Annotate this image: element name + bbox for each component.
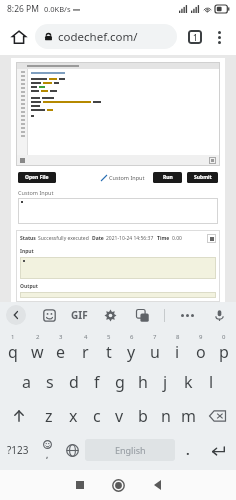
staticText: .	[186, 441, 190, 459]
staticText: k	[184, 371, 193, 393]
staticText: ,	[46, 449, 49, 460]
staticText: x	[69, 405, 78, 427]
staticText: j	[163, 371, 168, 393]
staticText: 6	[130, 333, 134, 341]
button[interactable]: Back	[138, 470, 177, 500]
button[interactable]: Tabs	[182, 24, 208, 50]
button[interactable]: z	[37, 399, 61, 433]
staticText: 0.0KB/s	[44, 4, 71, 14]
staticText: Submit	[194, 174, 212, 181]
staticText: h	[138, 371, 148, 393]
staticText: 4	[84, 333, 88, 341]
button[interactable]: 5	[97, 331, 120, 365]
button[interactable]: n	[154, 399, 177, 433]
staticText: d	[69, 371, 79, 393]
staticText: 1	[193, 32, 198, 43]
button[interactable]: v	[108, 399, 131, 433]
staticText: w	[31, 341, 44, 363]
staticText: c	[93, 405, 101, 427]
button[interactable]: 6	[120, 331, 143, 365]
button[interactable]: a	[14, 365, 38, 399]
button[interactable]: Copy	[207, 234, 216, 243]
button[interactable]: Recents	[60, 470, 99, 500]
button[interactable]: More options	[208, 26, 230, 48]
button[interactable]: codechef.com/submit/H	[35, 24, 177, 49]
button[interactable]: Open File	[18, 172, 56, 183]
staticText: b	[138, 405, 148, 427]
staticText: Successfully executed	[38, 235, 89, 242]
staticText: Custom Input	[109, 174, 145, 181]
staticText: a	[22, 371, 31, 393]
staticText: 0	[222, 333, 226, 341]
staticText: p	[219, 341, 229, 363]
staticText: Input	[20, 248, 34, 255]
staticText: Output	[20, 283, 38, 290]
button[interactable]: 3	[49, 331, 73, 365]
staticText: Run	[163, 174, 173, 181]
button[interactable]: 2	[25, 331, 49, 365]
staticText: English	[115, 444, 146, 456]
button[interactable]: Voice input	[209, 305, 229, 325]
button[interactable]: 7	[143, 331, 166, 365]
staticText: Custom Input	[18, 189, 54, 196]
button[interactable]: j	[154, 365, 177, 399]
staticText: GIF	[71, 308, 88, 322]
staticText: q	[8, 341, 18, 363]
button[interactable]: 1	[1, 331, 25, 365]
staticText: o	[196, 341, 206, 363]
staticText: 2	[36, 333, 40, 341]
button[interactable]: Backspace	[200, 399, 235, 433]
button[interactable]: l	[200, 365, 223, 399]
button[interactable]: m	[177, 399, 200, 433]
button[interactable]: x	[61, 399, 85, 433]
staticText: s	[46, 371, 54, 393]
button[interactable]: Shift	[1, 399, 37, 433]
staticText: 2021-10-24 14:56:37	[106, 235, 154, 242]
button[interactable]: ?123	[1, 433, 35, 467]
button[interactable]: Enter	[200, 433, 235, 467]
button[interactable]: Change language	[60, 433, 85, 467]
button[interactable]: Settings	[100, 305, 120, 325]
staticText: m	[181, 405, 196, 427]
staticText: 9	[199, 333, 203, 341]
button[interactable]: d	[62, 365, 85, 399]
button[interactable]: .	[175, 433, 200, 467]
button[interactable]: English	[85, 439, 175, 461]
button[interactable]: k	[177, 365, 200, 399]
button[interactable]: 9	[189, 331, 212, 365]
staticText: z	[45, 405, 53, 427]
button[interactable]: GIF	[71, 308, 88, 322]
staticText: 3	[59, 333, 63, 341]
button[interactable]: Stickers	[39, 305, 59, 325]
staticText: ?123	[7, 443, 29, 457]
button[interactable]: More	[177, 305, 197, 325]
staticText: r	[82, 341, 89, 363]
button[interactable]: 8	[166, 331, 189, 365]
button[interactable]: Emoji	[35, 433, 60, 467]
staticText: g	[115, 371, 125, 393]
button[interactable]	[18, 198, 218, 224]
button[interactable]: g	[108, 365, 131, 399]
button[interactable]: s	[38, 365, 62, 399]
staticText: Date	[92, 235, 104, 242]
button[interactable]: Home	[6, 24, 32, 50]
button[interactable]: 4	[73, 331, 97, 365]
staticText: Status	[20, 235, 36, 242]
staticText: 8:26 PM	[7, 3, 39, 15]
button[interactable]: b	[131, 399, 154, 433]
staticText: 5	[107, 333, 111, 341]
staticText: v	[115, 405, 124, 427]
button[interactable]: Translate	[132, 305, 152, 325]
button[interactable]: Custom Input	[101, 174, 145, 181]
button[interactable]: 0	[212, 331, 235, 365]
button[interactable]: Submit	[187, 172, 218, 183]
button[interactable]: f	[85, 365, 108, 399]
button[interactable]: Home	[99, 470, 138, 500]
button[interactable]: h	[131, 365, 154, 399]
staticText: Time	[157, 235, 170, 242]
button[interactable]: Run	[153, 172, 182, 183]
button[interactable]: Back	[6, 305, 26, 325]
staticText: 1	[11, 333, 15, 341]
staticText: Open File	[25, 174, 49, 181]
button[interactable]: c	[85, 399, 108, 433]
